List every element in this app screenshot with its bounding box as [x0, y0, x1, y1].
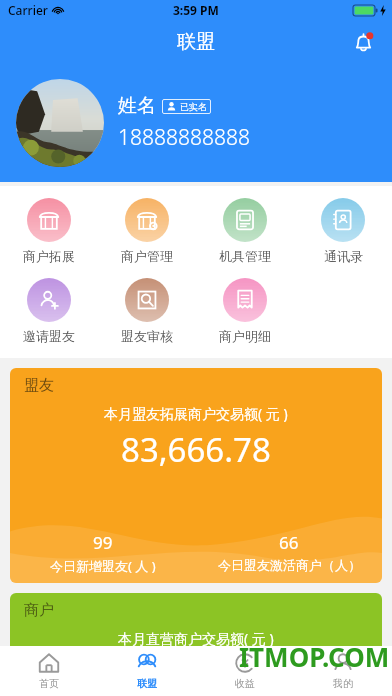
staticText: 已实名	[180, 101, 207, 112]
staticText: 邀请盟友	[23, 328, 75, 344]
staticText: 首页	[39, 677, 59, 690]
button[interactable]: 我的	[294, 646, 392, 696]
button[interactable]: 收益	[196, 646, 294, 696]
button[interactable]: 联盟	[98, 646, 196, 696]
staticText: 本月直营商户交易额( 元 )	[118, 629, 274, 648]
staticText: 机具管理	[219, 248, 271, 264]
staticText: 我的	[333, 677, 353, 690]
staticText: ITMOP.COM	[239, 639, 390, 674]
staticText: 3:59 PM	[173, 2, 219, 18]
staticText: 商户	[24, 601, 54, 620]
staticText: 姓名	[118, 94, 156, 118]
staticText: 83,666.78	[121, 427, 271, 472]
button[interactable]: 商户拓展	[0, 196, 98, 266]
button[interactable]: 通讯录	[294, 196, 392, 266]
staticText: 本月盟友拓展商户交易额( 元 )	[104, 404, 288, 423]
button[interactable]: 商户明细	[196, 276, 294, 346]
staticText: 66	[279, 531, 299, 554]
staticText: 联盟	[137, 677, 157, 690]
staticText: 商户管理	[121, 248, 173, 264]
button[interactable]: Notifications	[348, 27, 378, 57]
button[interactable]: 首页	[0, 646, 98, 696]
staticText: 盟友审核	[121, 328, 173, 344]
staticText: 今日新增盟友( 人 )	[50, 557, 156, 575]
staticText: 商户拓展	[23, 248, 75, 264]
staticText: 商户明细	[219, 328, 271, 344]
staticText: 今日盟友激活商户（人）	[218, 557, 361, 573]
staticText: 盟友	[24, 376, 54, 395]
button[interactable]: 邀请盟友	[0, 276, 98, 346]
button[interactable]: 盟友	[10, 368, 382, 583]
button[interactable]: 商户管理	[98, 196, 196, 266]
staticText: 联盟	[177, 30, 215, 54]
button[interactable]: 盟友审核	[98, 276, 196, 346]
button[interactable]: 姓名	[16, 64, 392, 182]
staticText: 收益	[235, 677, 255, 690]
staticText: 通讯录	[324, 248, 363, 264]
staticText: 99	[93, 531, 113, 554]
staticText: 18888888888	[118, 123, 250, 152]
button[interactable]: 机具管理	[196, 196, 294, 266]
staticText: Carrier	[8, 2, 48, 18]
button[interactable]: 商户	[10, 593, 382, 696]
